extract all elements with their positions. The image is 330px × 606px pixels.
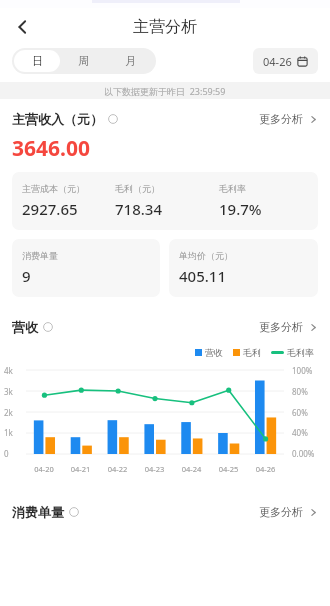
staticText: 718.34: [115, 199, 162, 219]
staticText: 04-21: [62, 464, 99, 474]
staticText: 2k: [4, 407, 22, 418]
staticText: 消费单量: [22, 250, 58, 261]
staticText: 100%: [292, 365, 330, 376]
staticText: 更多分析: [259, 112, 303, 126]
staticText: 04-23: [136, 464, 173, 474]
staticText: 0.00%: [292, 448, 330, 459]
staticText: 80%: [292, 386, 330, 397]
staticText: 2927.65: [22, 199, 78, 219]
staticText: 主营收入（元）: [12, 111, 103, 127]
staticText: 405.11: [179, 266, 226, 286]
button[interactable]: 更多分析: [259, 317, 318, 337]
staticText: 更多分析: [259, 320, 303, 334]
staticText: 更多分析: [259, 505, 303, 519]
button[interactable]: 月: [107, 50, 154, 72]
staticText: 周: [78, 54, 89, 68]
other: Info: [108, 114, 118, 124]
staticText: 主营成本（元）: [22, 183, 85, 194]
staticText: 单均价（元）: [179, 250, 233, 261]
staticText: 营收: [12, 319, 38, 335]
staticText: 以下数据更新于昨日 23:59:59: [104, 85, 226, 97]
staticText: 毛利率: [219, 183, 246, 194]
button[interactable]: 单均价（元）: [169, 239, 318, 297]
button[interactable]: 更多分析: [259, 502, 318, 522]
staticText: 营收: [205, 347, 223, 358]
other: Info: [69, 507, 79, 517]
staticText: 主营分析: [133, 17, 197, 37]
staticText: 40%: [292, 427, 330, 438]
button[interactable]: 消费单量: [12, 239, 160, 297]
button[interactable]: 周: [60, 50, 107, 72]
staticText: 日: [32, 54, 43, 68]
staticText: 04-20: [26, 464, 62, 474]
staticText: 3646.00: [12, 134, 90, 163]
staticText: 月: [125, 54, 136, 68]
staticText: 毛利（元）: [115, 183, 160, 194]
staticText: 9: [22, 266, 31, 286]
button[interactable]: 更多分析: [259, 109, 318, 129]
staticText: 19.7%: [219, 199, 262, 219]
staticText: 04-24: [173, 464, 210, 474]
staticText: 4k: [4, 365, 22, 376]
staticText: 1k: [4, 427, 22, 438]
staticText: 消费单量: [12, 504, 64, 520]
staticText: 3k: [4, 386, 22, 397]
staticText: 毛利: [243, 347, 261, 358]
button[interactable]: Back: [6, 10, 40, 44]
staticText: 0: [4, 448, 22, 459]
button[interactable]: 主营成本（元）: [12, 172, 318, 230]
staticText: 60%: [292, 407, 330, 418]
staticText: 毛利率: [287, 347, 314, 358]
staticText: 04-22: [99, 464, 136, 474]
staticText: 04-25: [210, 464, 247, 474]
staticText: 04-26: [247, 464, 284, 474]
staticText: 04-26: [263, 54, 292, 69]
button[interactable]: 04-26: [253, 48, 318, 74]
button[interactable]: 日: [14, 50, 60, 72]
other: Info: [43, 322, 53, 332]
